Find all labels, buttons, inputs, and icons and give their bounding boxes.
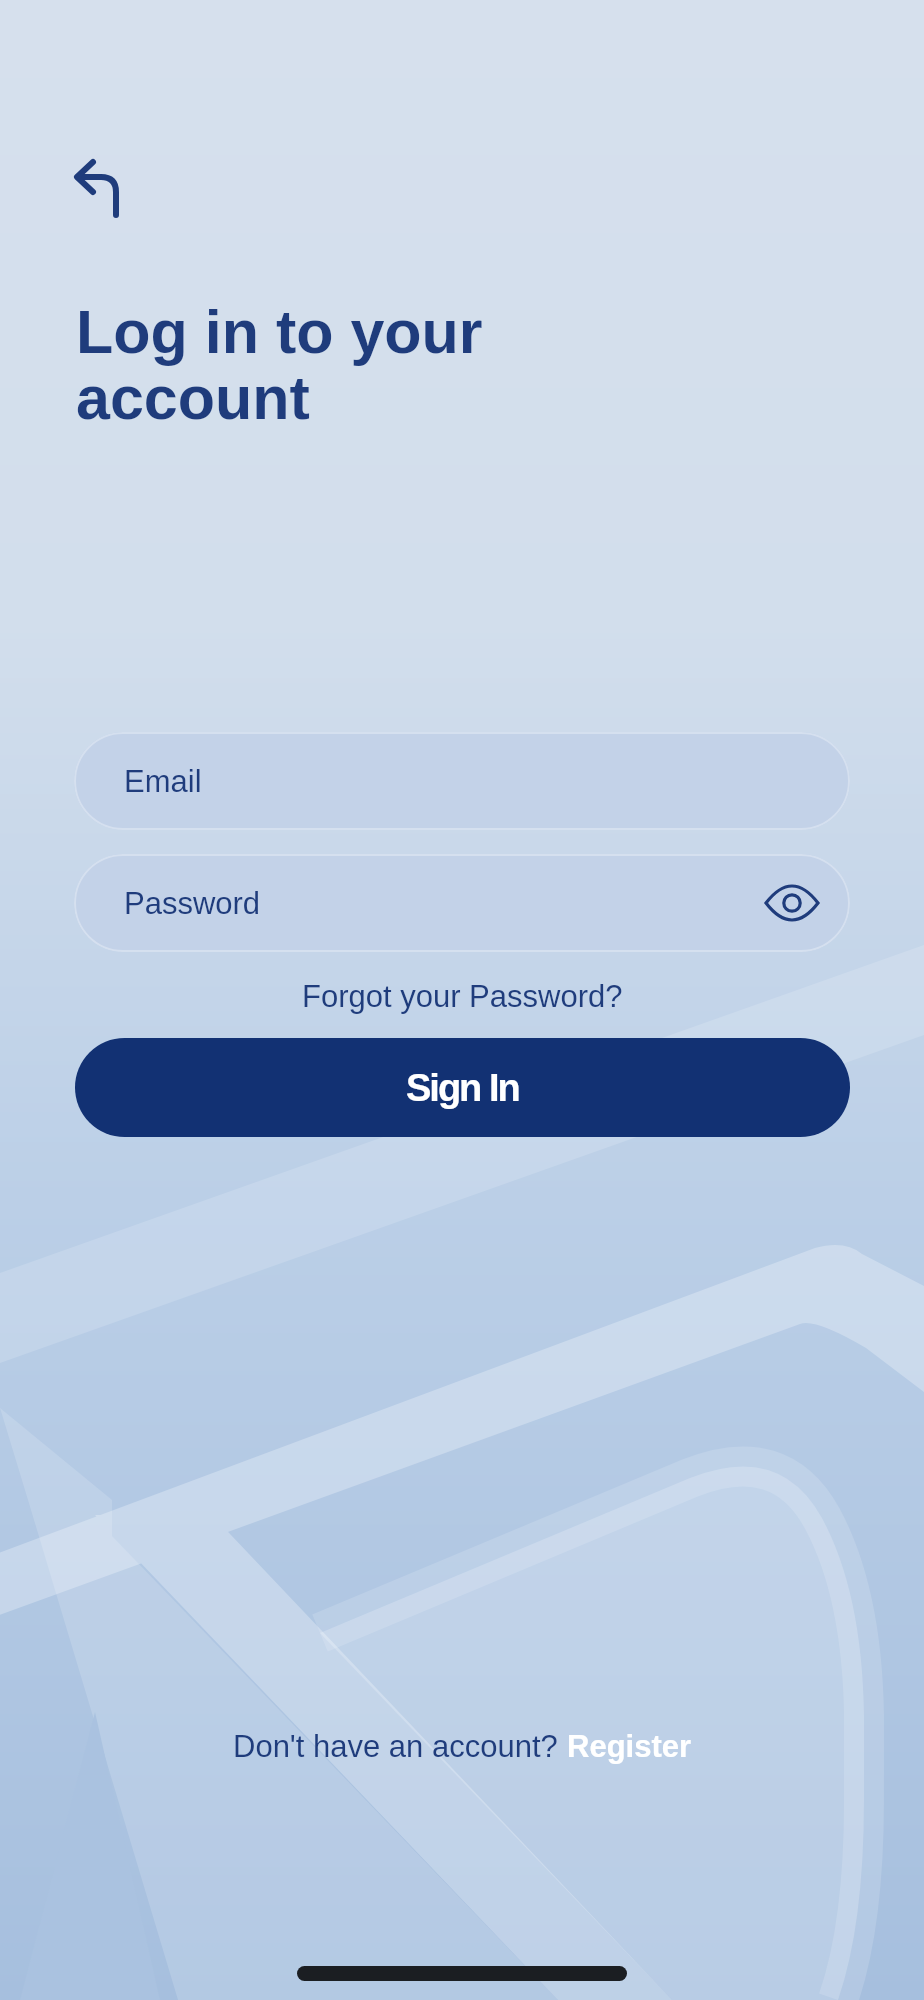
button[interactable]: Sign In xyxy=(75,1038,850,1137)
staticText: Don't have an account? xyxy=(233,1729,567,1764)
button[interactable] xyxy=(56,140,136,234)
staticText: Log in to your account xyxy=(76,298,483,432)
button[interactable]: Forgot your Password? xyxy=(302,979,623,1014)
button[interactable]: Don't have an account? xyxy=(233,1729,692,1764)
staticText: Password xyxy=(124,886,261,921)
staticText: Email xyxy=(124,764,202,799)
staticText: Register xyxy=(567,1729,692,1764)
button[interactable]: Password xyxy=(74,854,850,952)
button[interactable]: Email xyxy=(74,732,850,830)
staticText: Sign In xyxy=(406,1067,519,1109)
